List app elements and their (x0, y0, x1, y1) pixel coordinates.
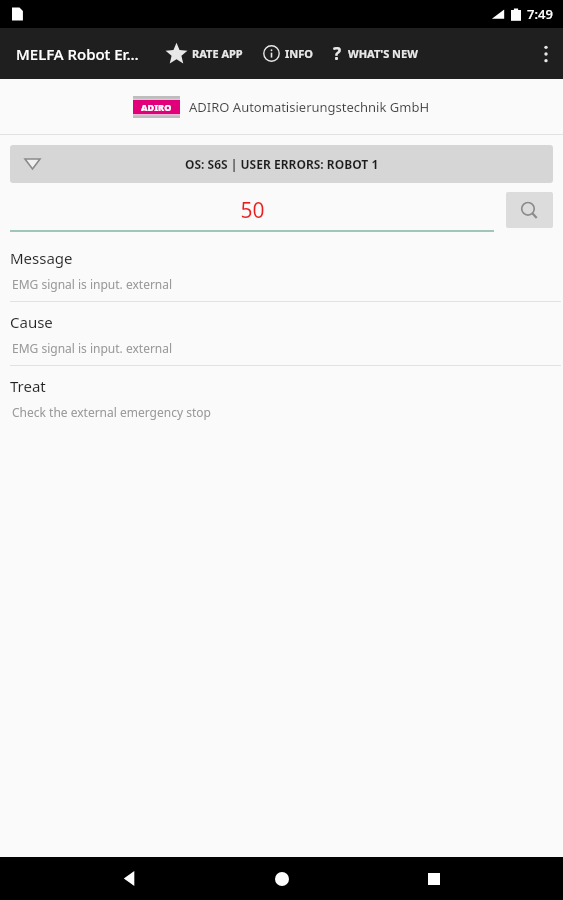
button[interactable]: Search (506, 192, 553, 228)
button[interactable]: Back (106, 857, 152, 900)
staticText: MELFA Robot Er… (16, 44, 139, 64)
button[interactable]: More options (529, 28, 563, 79)
staticText: ? (333, 42, 342, 65)
staticText: EMG signal is input. external (12, 340, 173, 356)
staticText: Message (10, 248, 73, 268)
staticText: WHAT'S NEW (348, 46, 418, 61)
button[interactable]: RATE APP (161, 36, 247, 71)
staticText: ADIRO Automatisierungstechnik GmbH (189, 98, 430, 116)
staticText: RATE APP (192, 46, 243, 61)
staticText: 7:49 (527, 5, 553, 23)
staticText: Treat (10, 376, 46, 396)
button[interactable]: ADIRO (0, 79, 563, 134)
button[interactable]: ? (329, 36, 422, 71)
button[interactable]: Cause (0, 312, 563, 376)
staticText: INFO (285, 46, 313, 61)
staticText: EMG signal is input. external (12, 276, 173, 292)
button[interactable]: INFO (259, 39, 317, 68)
button[interactable]: Message (0, 248, 563, 312)
staticText: 50 (240, 196, 265, 225)
button[interactable]: 50 (10, 194, 494, 226)
staticText: Check the external emergency stop (12, 404, 211, 420)
button[interactable]: OS: S6S | USER ERRORS: ROBOT 1 (10, 145, 553, 183)
button[interactable]: Treat (0, 376, 563, 429)
button[interactable]: Home (259, 857, 305, 900)
staticText: OS: S6S | USER ERRORS: ROBOT 1 (185, 156, 379, 172)
staticText: Cause (10, 312, 53, 332)
staticText: ADIRO (141, 101, 172, 113)
button[interactable]: Recent apps (411, 857, 457, 900)
